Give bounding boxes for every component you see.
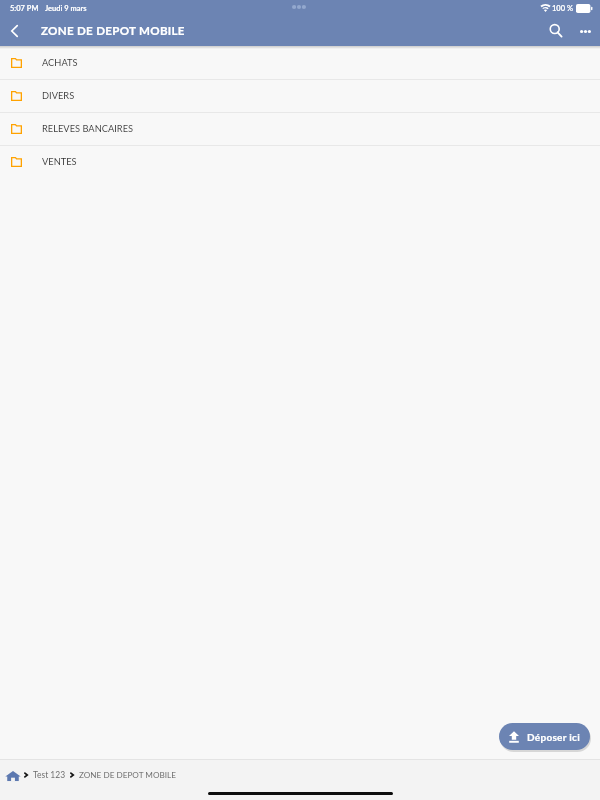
button[interactable]: More options — [570, 16, 600, 46]
staticText: ZONE DE DEPOT MOBILE — [79, 770, 176, 780]
button[interactable]: Back — [0, 16, 30, 46]
button[interactable]: Test 123 — [33, 770, 66, 780]
button[interactable]: DIVERS — [0, 80, 600, 112]
button[interactable]: Home — [0, 764, 20, 786]
staticText: 5:07 PM — [10, 4, 39, 13]
button[interactable]: Déposer ici — [499, 723, 590, 750]
button[interactable]: ACHATS — [0, 47, 600, 79]
staticText: DIVERS — [42, 90, 75, 101]
staticText: RELEVES BANCAIRES — [42, 123, 134, 134]
staticText: ZONE DE DEPOT MOBILE — [41, 24, 185, 38]
staticText: ACHATS — [42, 57, 78, 68]
staticText: Jeudi 9 mars — [45, 4, 87, 13]
button[interactable]: Search — [540, 16, 570, 46]
staticText: Déposer ici — [527, 731, 580, 743]
button[interactable]: RELEVES BANCAIRES — [0, 113, 600, 145]
staticText: VENTES — [42, 156, 77, 167]
button[interactable]: VENTES — [0, 146, 600, 178]
staticText: 100 % — [552, 4, 574, 13]
